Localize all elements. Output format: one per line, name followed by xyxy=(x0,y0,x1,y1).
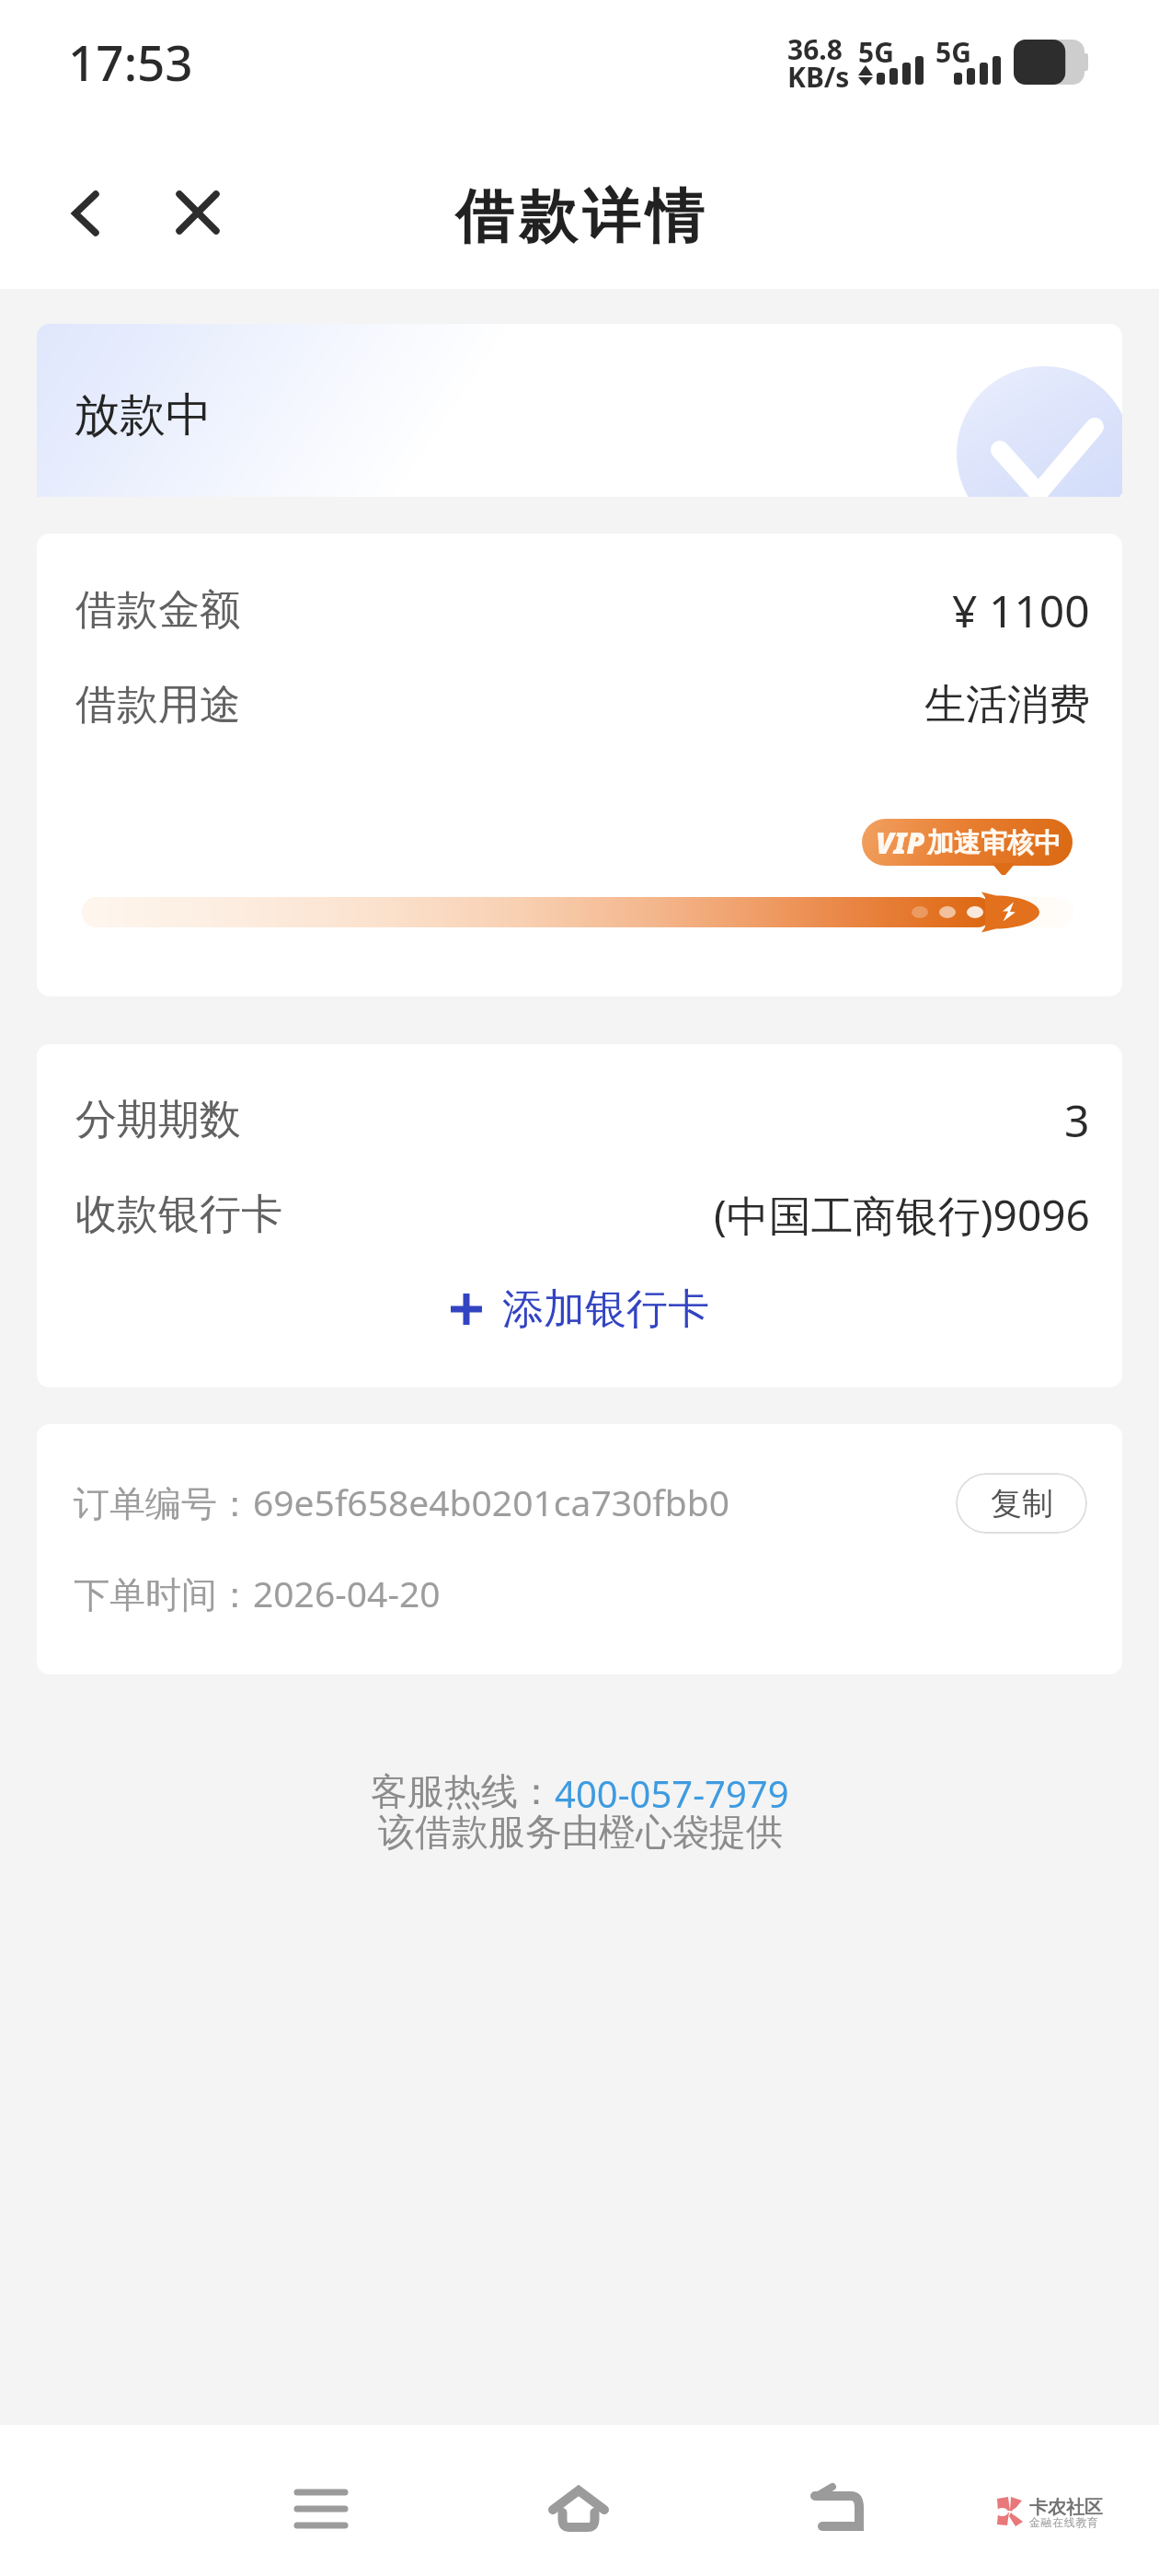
staticText: (中国工商银行)9096 xyxy=(714,1186,1090,1244)
button[interactable]: Back xyxy=(46,174,123,251)
staticText: 生活消费 xyxy=(924,679,1090,731)
button[interactable]: 400-057-7979 xyxy=(555,1768,789,1818)
button[interactable]: Back xyxy=(795,2467,878,2550)
staticText: 下单时间：2026-04-20 xyxy=(74,1569,441,1617)
button[interactable]: 复制 xyxy=(956,1473,1087,1534)
button[interactable]: 放款中 xyxy=(37,324,1122,497)
button[interactable]: 添加银行卡 xyxy=(37,1272,1122,1346)
staticText: 加速审核中 xyxy=(927,826,1061,860)
staticText: 借款用途 xyxy=(75,679,241,731)
staticText: 借款金额 xyxy=(75,584,241,637)
staticText: 借款详情 xyxy=(453,180,706,253)
staticText: 金融在线教育 xyxy=(1029,2515,1099,2529)
staticText: 该借款服务由橙心袋提供 xyxy=(378,1809,783,1855)
staticText: 复制 xyxy=(991,1484,1053,1524)
staticText: 收款银行卡 xyxy=(75,1189,282,1241)
staticText: 放款中 xyxy=(74,386,212,444)
staticText: 3 xyxy=(1064,1090,1090,1150)
staticText: 客服热线： xyxy=(371,1768,555,1814)
staticText: 订单编号：69e5f658e4b0201ca730fbb0 xyxy=(74,1478,729,1526)
staticText: 分期期数 xyxy=(75,1094,241,1146)
button[interactable]: Close xyxy=(158,173,237,252)
button[interactable]: Recent apps xyxy=(280,2467,362,2550)
staticText: 17:53 xyxy=(68,29,193,95)
staticText: ¥ 1100 xyxy=(952,581,1090,640)
staticText: 5G xyxy=(935,33,971,71)
staticText: KB/s xyxy=(787,58,850,96)
staticText: 5G xyxy=(858,33,894,71)
button[interactable]: Home xyxy=(537,2467,620,2550)
staticText: 添加银行卡 xyxy=(502,1283,709,1336)
staticText: 卡农社区 xyxy=(1029,2496,1103,2519)
staticText: VIP xyxy=(876,822,925,863)
staticText: 36.8 xyxy=(787,30,843,68)
